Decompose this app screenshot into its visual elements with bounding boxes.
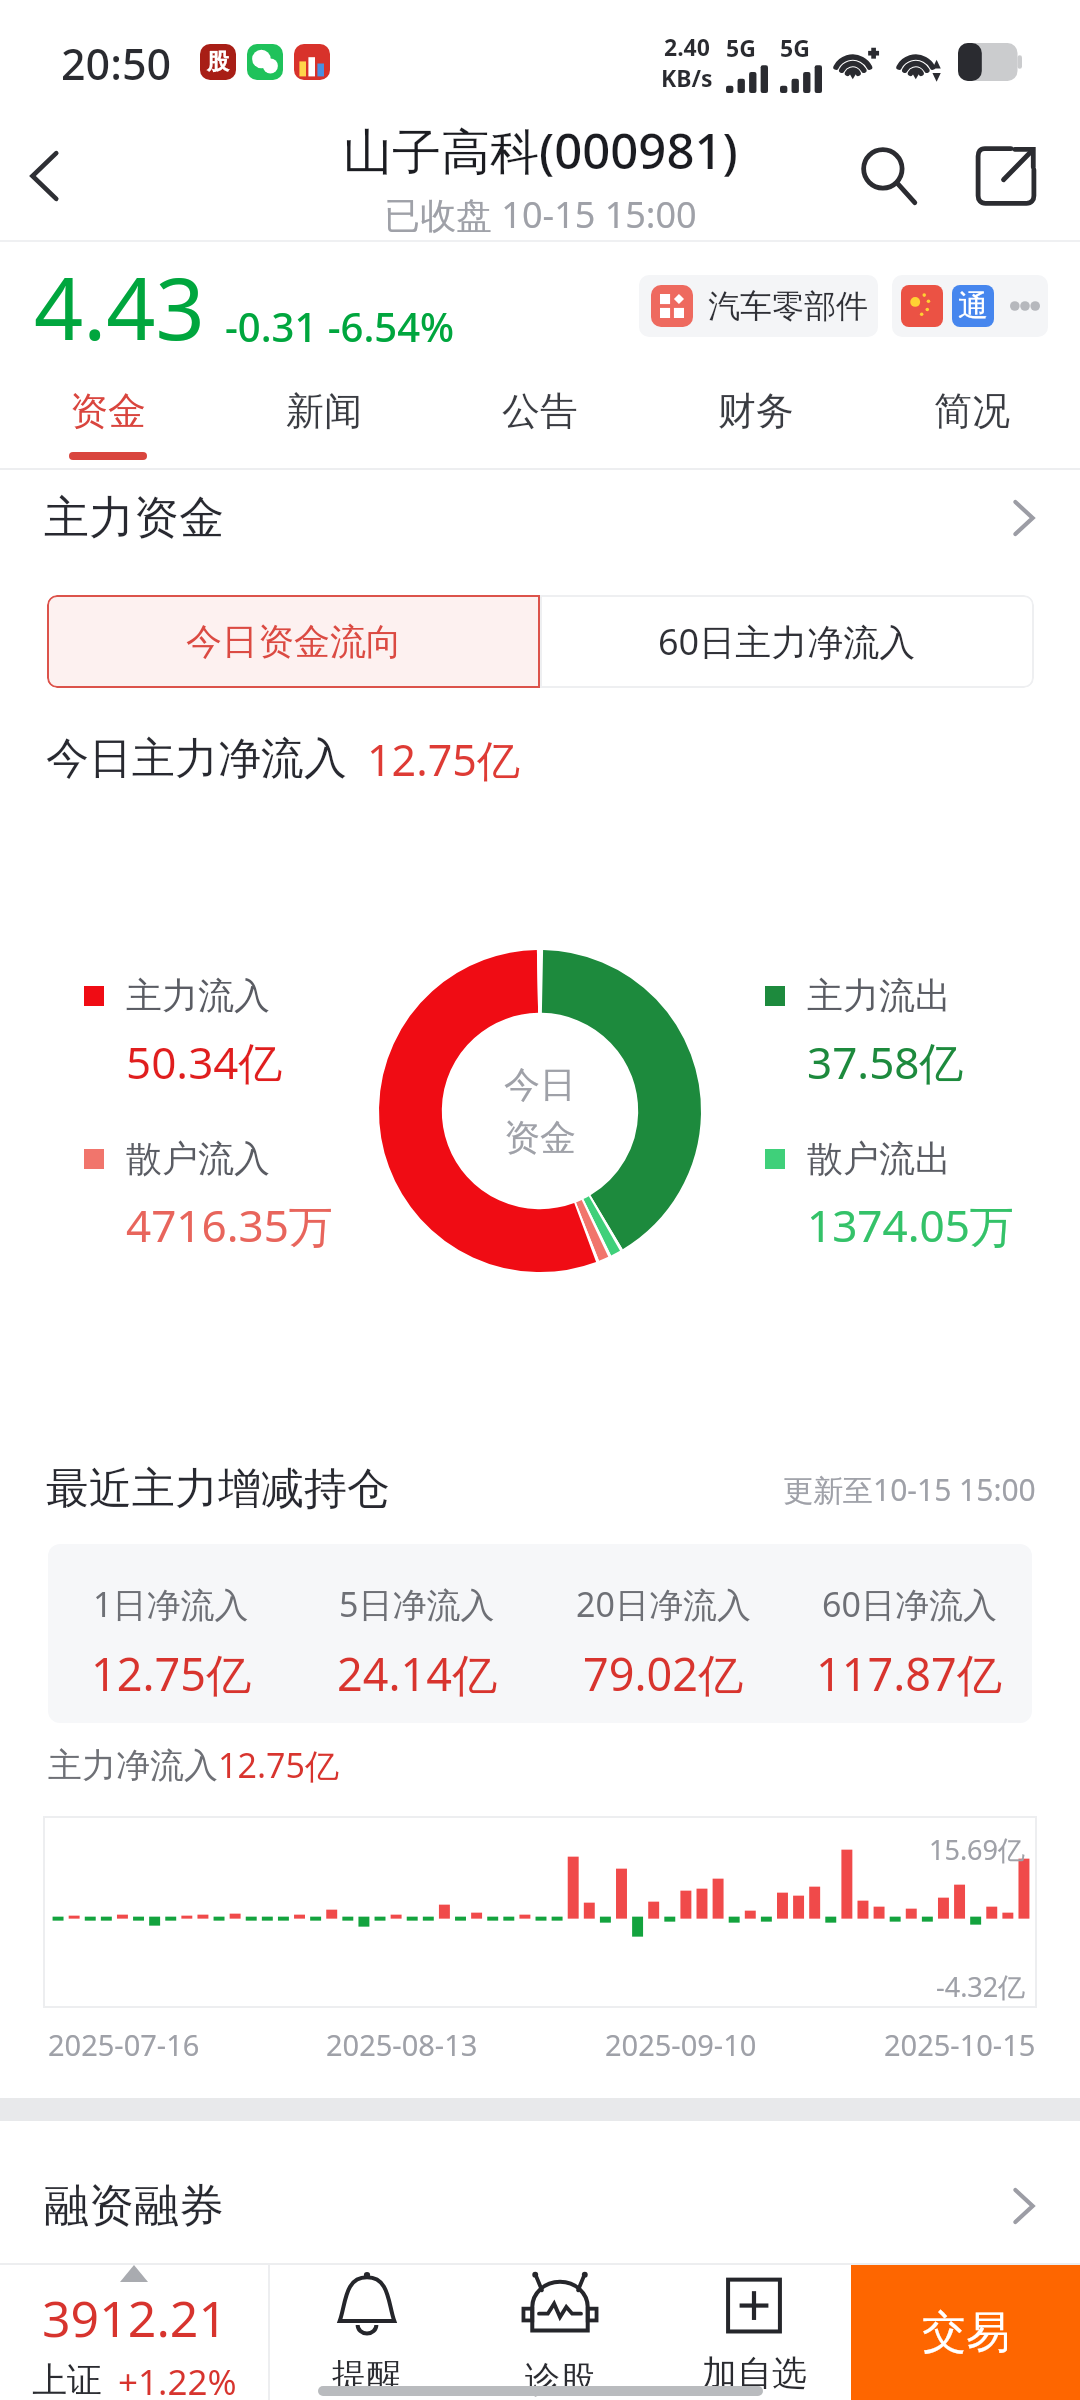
staticText: 主力净流入 xyxy=(48,1744,218,1787)
staticText: 更新至10-15 15:00 xyxy=(783,1469,1036,1510)
staticText: 股 xyxy=(207,48,229,76)
staticText: 加自选 xyxy=(702,2351,807,2395)
staticText: 今日主力净流入 xyxy=(46,732,347,786)
staticText: 山子高科(000981) xyxy=(343,117,738,184)
staticText: KB/s xyxy=(661,62,713,93)
staticText: 提醒 xyxy=(332,2354,402,2398)
staticText: 12.75亿 xyxy=(218,1742,339,1788)
button[interactable]: 公告 xyxy=(432,370,648,468)
staticText: 公告 xyxy=(502,387,578,435)
staticText: 12.75亿 xyxy=(91,1643,252,1704)
staticText: 60日净流入 xyxy=(822,1581,997,1627)
staticText: 主力资金 xyxy=(44,490,224,547)
staticText: 60日主力净流入 xyxy=(658,617,916,666)
staticText: 今日资金流向 xyxy=(186,619,402,664)
staticText: 资金 xyxy=(70,387,146,435)
staticText: 2025-10-15 xyxy=(884,2025,1036,2064)
button[interactable]: 60日主力净流入 xyxy=(540,595,1034,688)
staticText: 5G xyxy=(780,32,810,63)
staticText: -0.31 -6.54% xyxy=(225,299,455,353)
staticText: 已收盘 10-15 15:00 xyxy=(384,190,697,239)
staticText: 1374.05万 xyxy=(807,1195,1014,1255)
staticText: 上证 xyxy=(32,2358,102,2400)
button[interactable]: 主力资金 xyxy=(0,470,1080,566)
button[interactable]: 诊股 xyxy=(463,2265,657,2400)
button[interactable]: 通 xyxy=(892,275,1048,337)
staticText: 117.87亿 xyxy=(816,1643,1002,1704)
button[interactable]: 3912.21 xyxy=(0,2265,268,2400)
staticText: 主力流出 xyxy=(807,973,951,1018)
button[interactable]: 新闻 xyxy=(216,370,432,468)
staticText: 37.58亿 xyxy=(807,1032,964,1092)
button[interactable]: Back xyxy=(4,136,84,216)
staticText: 交易 xyxy=(922,2305,1010,2360)
staticText: 4716.35万 xyxy=(126,1195,333,1255)
staticText: 新闻 xyxy=(286,387,362,435)
button[interactable]: 交易 xyxy=(851,2265,1080,2400)
button[interactable]: 资金 xyxy=(0,370,216,468)
staticText: 诊股 xyxy=(525,2357,595,2400)
button[interactable]: Search xyxy=(845,131,935,221)
staticText: 5G xyxy=(726,32,756,63)
staticText: 79.02亿 xyxy=(583,1643,744,1704)
staticText: 2025-08-13 xyxy=(326,2025,478,2064)
button[interactable]: 融资融券 xyxy=(0,2121,1080,2263)
button[interactable]: 提醒 xyxy=(270,2265,463,2400)
staticText: 散户流出 xyxy=(807,1136,951,1181)
staticText: 12.75亿 xyxy=(367,730,520,789)
staticText: 15.69亿 xyxy=(929,1831,1026,1868)
button[interactable]: 汽车零部件 xyxy=(639,275,878,337)
staticText: 散户流入 xyxy=(126,1136,270,1181)
staticText: 财务 xyxy=(718,387,794,435)
staticText: -4.32亿 xyxy=(936,1968,1026,2005)
staticText: 1日净流入 xyxy=(93,1581,249,1627)
staticText: 最近主力增减持仓 xyxy=(46,1462,390,1516)
staticText: 24.14亿 xyxy=(337,1643,498,1704)
button[interactable]: 加自选 xyxy=(657,2265,851,2400)
staticText: 3912.21 xyxy=(42,2284,227,2352)
staticText: 2025-07-16 xyxy=(48,2025,200,2064)
button[interactable]: 简况 xyxy=(864,370,1080,468)
staticText: 4.43 xyxy=(34,248,205,365)
staticText: 5日净流入 xyxy=(339,1581,495,1627)
staticText: 2025-09-10 xyxy=(605,2025,757,2064)
staticText: 简况 xyxy=(934,387,1010,435)
staticText: +1.22% xyxy=(118,2358,237,2400)
staticText: 50.34亿 xyxy=(126,1032,283,1092)
staticText: 资金 xyxy=(504,1115,576,1160)
staticText: 汽车零部件 xyxy=(708,286,868,326)
button[interactable]: 财务 xyxy=(648,370,864,468)
staticText: 融资融券 xyxy=(44,2178,224,2235)
button[interactable]: Share xyxy=(961,131,1051,221)
staticText: 通 xyxy=(958,287,988,325)
staticText: 20:50 xyxy=(61,34,172,93)
staticText: 今日 xyxy=(504,1062,576,1107)
staticText: 20日净流入 xyxy=(576,1581,751,1627)
staticText: 主力流入 xyxy=(126,973,270,1018)
button[interactable]: 今日资金流向 xyxy=(47,595,540,688)
staticText: 2.40 xyxy=(664,31,710,62)
